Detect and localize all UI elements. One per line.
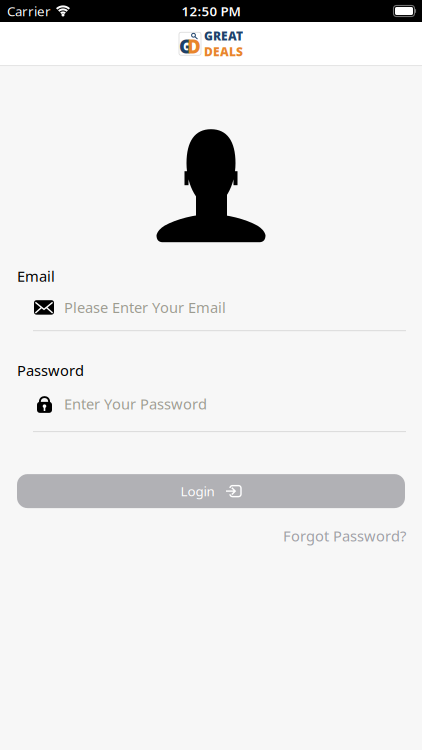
staticText: Carrier [7,2,51,20]
staticText: G [179,34,193,59]
staticText: Please Enter Your Email [64,298,226,317]
staticText: Enter Your Password [64,394,207,414]
textField[interactable]: Please Enter Your Email [64,298,422,317]
staticText: Login [180,482,214,500]
staticText: GREAT [204,28,243,44]
secureTextField[interactable]: Enter Your Password [64,394,422,414]
staticText: DEALS [204,44,243,60]
staticText: Forgot Password? [283,526,406,546]
staticText: 12:50 PM [181,2,240,20]
staticText: Password [17,361,84,380]
button[interactable]: Forgot Password? [283,526,406,546]
staticText: Email [17,266,55,286]
button[interactable]: Login [17,474,405,508]
staticText: D [187,34,201,59]
